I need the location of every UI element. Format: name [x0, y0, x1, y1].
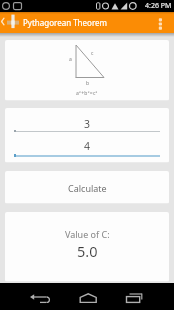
button[interactable]: Calculate — [5, 171, 169, 204]
button[interactable] — [0, 12, 22, 33]
staticText: a²+b²=c² — [76, 90, 98, 97]
button[interactable] — [58, 283, 116, 310]
staticText: b — [86, 80, 90, 87]
staticText: Pythagorean Theorem — [23, 17, 108, 28]
staticText: c — [91, 50, 94, 57]
button[interactable] — [0, 283, 58, 310]
staticText: 3 — [84, 117, 91, 131]
button[interactable] — [116, 283, 174, 310]
button[interactable]: 4 — [5, 134, 169, 160]
staticText: 4 — [84, 139, 91, 153]
button[interactable]: 3 — [5, 108, 169, 134]
button[interactable] — [160, 12, 174, 33]
staticText: 5.0 — [77, 241, 98, 261]
staticText: Calculate — [68, 182, 107, 194]
staticText: 4:26 PM — [145, 1, 172, 11]
staticText: Value of C: — [65, 228, 110, 240]
staticText: a — [69, 56, 72, 63]
